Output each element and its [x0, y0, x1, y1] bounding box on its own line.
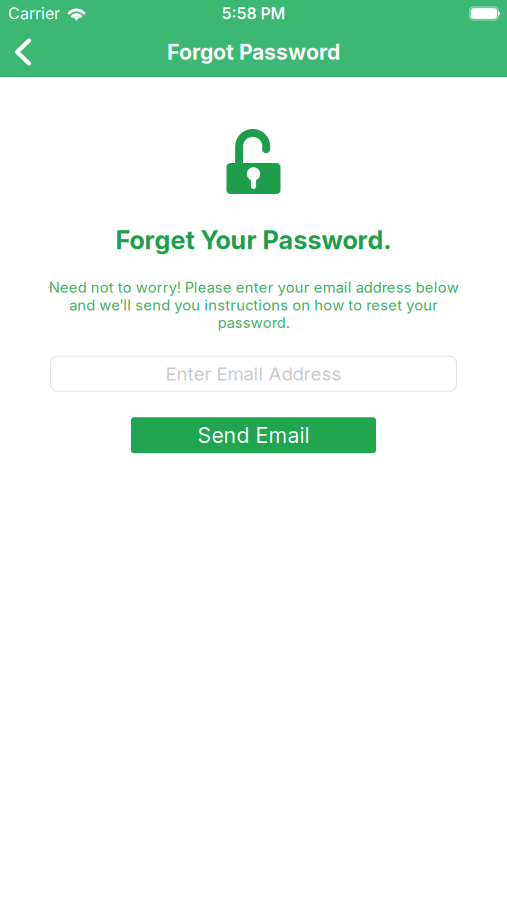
button[interactable]: Send Email: [131, 417, 376, 453]
button[interactable]: Back: [0, 28, 49, 75]
staticText: Need not to worry! Please enter your ema…: [48, 279, 458, 331]
staticText: Forgot Password: [167, 39, 340, 65]
button[interactable]: Enter Email Address: [50, 356, 456, 391]
staticText: Carrier: [8, 4, 60, 23]
staticText: Send Email: [197, 423, 309, 448]
staticText: Enter Email Address: [165, 363, 341, 385]
staticText: Forget Your Password.: [115, 225, 391, 255]
staticText: 5:58 PM: [221, 4, 285, 23]
